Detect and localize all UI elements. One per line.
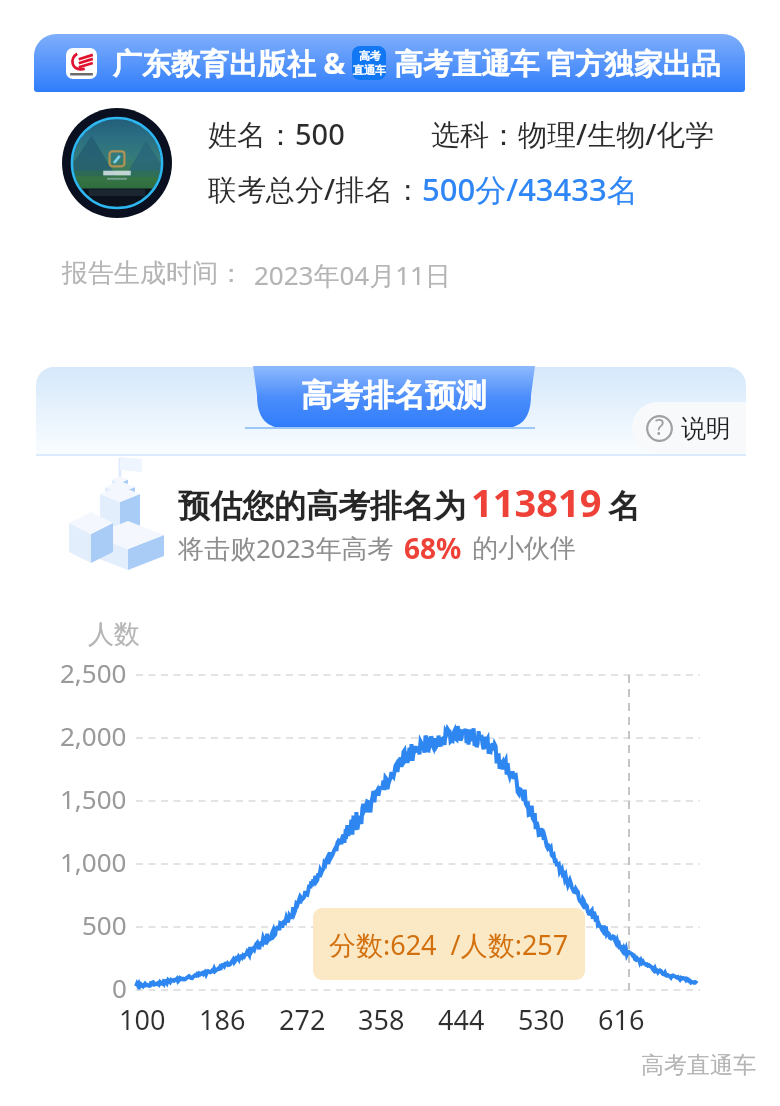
staticText: 广东教育出版社 & — [113, 43, 346, 83]
staticText: 0 — [112, 970, 127, 1005]
staticText: 500 — [82, 907, 127, 942]
staticText: 说明 — [681, 413, 731, 444]
staticText: 444 — [438, 1001, 485, 1038]
button[interactable]: 高考排名预测 — [245, 366, 543, 429]
staticText: 113819 — [471, 476, 602, 528]
staticText: 616 — [598, 1001, 645, 1038]
staticText: 报告生成时间： — [62, 257, 244, 290]
staticText: 2023年04月11日 — [254, 257, 451, 293]
button[interactable]: 说明 — [632, 402, 746, 454]
staticText: 联考总分/排名： — [208, 169, 423, 209]
staticText: 1,500 — [60, 781, 127, 816]
staticText: 68% — [404, 529, 462, 567]
staticText: 500分/43433名 — [422, 168, 638, 210]
staticText: 选科：物理/生物/化学 — [431, 114, 715, 154]
staticText: ? — [655, 413, 665, 442]
staticText: 272 — [279, 1001, 326, 1038]
staticText: 186 — [199, 1001, 246, 1038]
staticText: 2,500 — [60, 655, 127, 690]
staticText: 分数:624 /人数:257 — [329, 926, 569, 963]
staticText: 直通车 — [353, 63, 386, 77]
button[interactable]: 广东教育出版社 & — [34, 34, 745, 92]
staticText: 358 — [358, 1001, 405, 1038]
staticText: 将击败2023年高考 — [178, 530, 394, 566]
staticText: 姓名：500 — [208, 114, 345, 154]
staticText: 名 — [608, 486, 640, 526]
staticText: 的小伙伴 — [472, 532, 576, 565]
staticText: 100 — [119, 1001, 166, 1038]
staticText: 高考直通车 — [641, 1051, 756, 1080]
staticText: 高考 — [359, 49, 381, 63]
staticText: 人数 — [88, 618, 140, 651]
staticText: 530 — [518, 1001, 565, 1038]
staticText: 2,000 — [60, 718, 127, 753]
staticText: 1,000 — [60, 844, 127, 879]
staticText: 高考排名预测 — [301, 376, 487, 415]
staticText: 高考直通车 官方独家出品 — [394, 43, 721, 83]
staticText: 预估您的高考排名为 — [178, 486, 466, 526]
